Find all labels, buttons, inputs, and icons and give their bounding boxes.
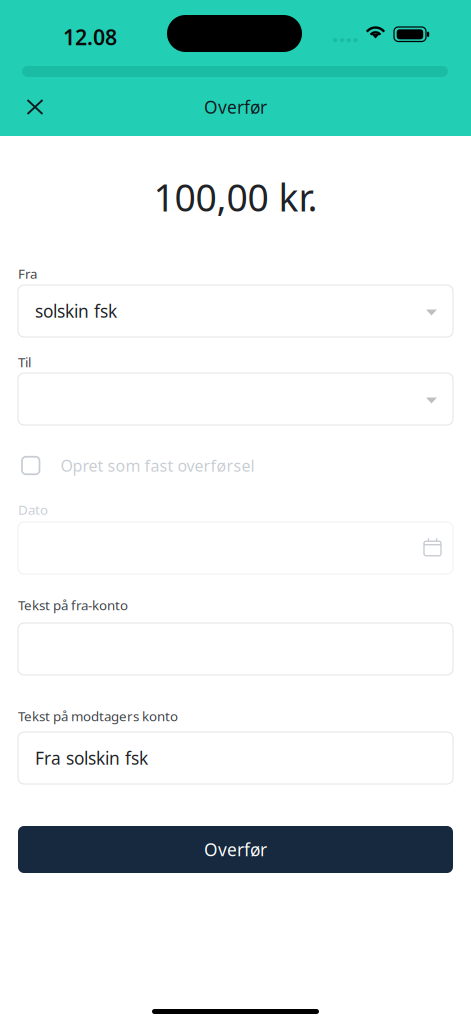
staticText: Opret som fast overførsel: [60, 455, 254, 476]
staticText: Overfør: [204, 838, 267, 861]
staticText: Til: [18, 353, 31, 371]
button[interactable]: Luk: [13, 85, 57, 129]
staticText: Tekst på modtagers konto: [18, 707, 178, 725]
staticText: Dato: [18, 501, 48, 518]
staticText: solskin fsk: [35, 299, 117, 322]
staticText: Fra: [18, 265, 37, 282]
button[interactable]: Overfør: [18, 826, 453, 873]
staticText: Tekst på fra-konto: [18, 596, 128, 614]
button[interactable]: Opret som fast overførsel: [22, 450, 322, 480]
staticText: Fra solskin fsk: [35, 746, 148, 769]
staticText: Overfør: [204, 95, 267, 118]
staticText: 100,00 kr.: [153, 172, 317, 222]
staticText: 12.08: [63, 23, 117, 51]
